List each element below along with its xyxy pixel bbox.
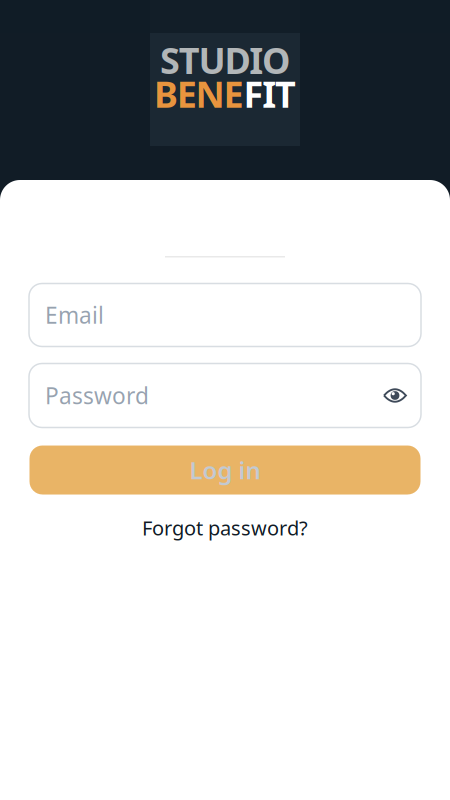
staticText: BENE [154, 70, 243, 118]
staticText: Log in [189, 454, 260, 486]
staticText: Password [45, 380, 149, 410]
staticText: FIT [243, 70, 296, 118]
button[interactable]: Log in [29, 445, 420, 494]
staticText: Forgot password? [142, 514, 308, 541]
staticText: Email [45, 300, 104, 330]
button[interactable]: Forgot password? [142, 514, 308, 541]
button[interactable]: Email [29, 283, 421, 346]
staticText: STUDIO [160, 36, 290, 84]
button[interactable]: Password [29, 363, 421, 427]
button[interactable]: Show password [383, 387, 407, 403]
